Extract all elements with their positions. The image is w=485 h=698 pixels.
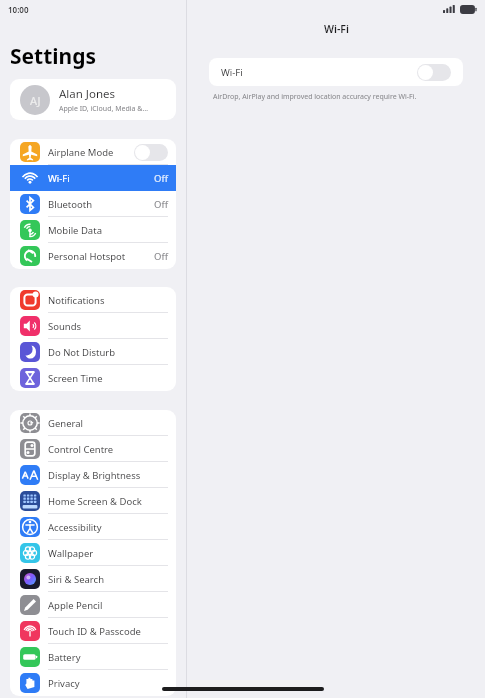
- staticText: Screen Time: [48, 372, 103, 385]
- staticText: Settings: [10, 42, 97, 71]
- staticText: Apple ID, iCloud, Media &…: [59, 104, 148, 114]
- staticText: Personal Hotspot: [48, 250, 126, 263]
- other: Home indicator: [162, 687, 324, 691]
- button[interactable]: Siri & Search: [10, 566, 176, 592]
- button[interactable]: Wi-Fi: [10, 165, 176, 191]
- button[interactable]: Notifications: [10, 287, 176, 313]
- staticText: Alan Jones: [59, 86, 116, 102]
- staticText: Sounds: [48, 320, 82, 333]
- button[interactable]: Wallpaper: [10, 540, 176, 566]
- staticText: Accessibility: [48, 521, 102, 534]
- button[interactable]: Airplane Mode: [10, 139, 176, 165]
- staticText: Wi-Fi: [221, 66, 243, 79]
- button[interactable]: AJ: [10, 79, 176, 120]
- button[interactable]: Accessibility: [10, 514, 176, 540]
- staticText: AirDrop, AirPlay and improved location a…: [213, 92, 417, 102]
- staticText: Do Not Disturb: [48, 346, 116, 359]
- staticText: General: [48, 417, 84, 430]
- button[interactable]: Personal Hotspot: [10, 243, 176, 269]
- staticText: AJ: [30, 93, 41, 108]
- button[interactable]: Bluetooth: [10, 191, 176, 217]
- staticText: Wi-Fi: [324, 22, 349, 36]
- staticText: Display & Brightness: [48, 469, 141, 482]
- staticText: Mobile Data: [48, 224, 102, 237]
- staticText: Privacy: [48, 677, 80, 690]
- staticText: Off: [154, 198, 168, 211]
- button[interactable]: Control Centre: [10, 436, 176, 462]
- button[interactable]: Touch ID & Passcode: [10, 618, 176, 644]
- button[interactable]: Home Screen & Dock: [10, 488, 176, 514]
- button[interactable]: Do Not Disturb: [10, 339, 176, 365]
- button[interactable]: Mobile Data: [10, 217, 176, 243]
- staticText: Apple Pencil: [48, 599, 103, 612]
- button[interactable]: Apple Pencil: [10, 592, 176, 618]
- staticText: Home Screen & Dock: [48, 495, 142, 508]
- staticText: Wi-Fi: [48, 172, 70, 185]
- staticText: Off: [154, 172, 168, 185]
- staticText: 10:00: [8, 4, 29, 15]
- button[interactable]: Display & Brightness: [10, 462, 176, 488]
- button[interactable]: Sounds: [10, 313, 176, 339]
- staticText: Control Centre: [48, 443, 114, 456]
- button[interactable]: Privacy: [10, 670, 176, 696]
- button[interactable]: Screen Time: [10, 365, 176, 391]
- staticText: Bluetooth: [48, 198, 93, 211]
- button[interactable]: [417, 64, 451, 81]
- staticText: Off: [154, 250, 168, 263]
- button[interactable]: [134, 144, 168, 161]
- staticText: Wallpaper: [48, 547, 94, 560]
- staticText: Notifications: [48, 294, 105, 307]
- staticText: Battery: [48, 651, 81, 664]
- staticText: Siri & Search: [48, 573, 105, 586]
- button[interactable]: Wi-Fi: [209, 58, 463, 86]
- button[interactable]: Battery: [10, 644, 176, 670]
- button[interactable]: General: [10, 410, 176, 436]
- staticText: Airplane Mode: [48, 146, 114, 159]
- staticText: Touch ID & Passcode: [48, 625, 141, 638]
